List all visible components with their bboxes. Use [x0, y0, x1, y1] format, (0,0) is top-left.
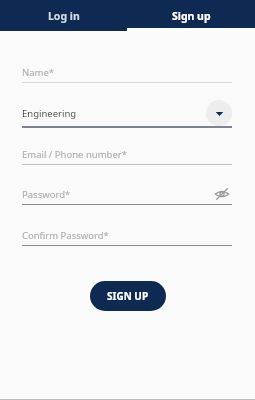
button[interactable]: Open department dropdown: [206, 100, 232, 126]
staticText: SIGN UP: [107, 289, 149, 303]
button[interactable]: Engineering: [22, 100, 232, 126]
button[interactable]: Sign up: [127, 0, 255, 31]
staticText: Email / Phone number*: [22, 148, 127, 161]
button[interactable]: Email / Phone number*: [22, 144, 232, 164]
staticText: Log in: [48, 9, 80, 23]
button[interactable]: Show password: [212, 184, 232, 204]
staticText: Confirm Password*: [22, 229, 109, 242]
staticText: Engineering: [22, 107, 77, 120]
button[interactable]: Password*: [22, 184, 232, 204]
button[interactable]: Name*: [22, 62, 232, 82]
button[interactable]: Confirm Password*: [22, 225, 232, 245]
staticText: Name*: [22, 66, 55, 79]
staticText: Sign up: [172, 9, 211, 23]
staticText: Password*: [22, 188, 71, 201]
button[interactable]: SIGN UP: [90, 281, 166, 311]
button[interactable]: Log in: [0, 0, 127, 31]
